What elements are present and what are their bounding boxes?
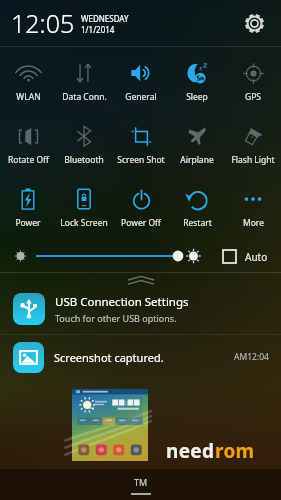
button[interactable]: Flash Light <box>225 123 281 166</box>
staticText: Auto <box>245 250 268 264</box>
staticText: WEDNESDAY <box>81 13 129 24</box>
button[interactable]: Airplane <box>169 123 225 166</box>
button[interactable]: Sleep <box>169 60 225 103</box>
staticText: More <box>243 217 264 229</box>
staticText: Power Off <box>121 217 161 229</box>
staticText: WLAN <box>16 91 41 103</box>
staticText: Power <box>15 217 41 229</box>
button[interactable]: Screenshot captured. <box>0 335 281 379</box>
staticText: need <box>166 438 215 464</box>
staticText: AM12:04 <box>234 351 269 363</box>
staticText: rom <box>215 438 255 464</box>
button[interactable]: More <box>225 186 281 229</box>
button[interactable]: Restart <box>169 186 225 229</box>
button[interactable]: Bluetooth <box>56 123 112 166</box>
staticText: Airplane <box>180 154 214 166</box>
staticText: Data Conn. <box>62 91 107 103</box>
staticText: 1/1/2014 <box>81 24 115 35</box>
staticText: Touch for other USB options. <box>55 312 177 324</box>
button[interactable]: Screen Shot <box>113 123 169 166</box>
button[interactable]: General <box>113 60 169 103</box>
staticText: USB Connection Settings <box>55 294 189 310</box>
staticText: GPS <box>245 91 261 103</box>
staticText: 12:05 <box>11 6 75 40</box>
button[interactable]: GPS <box>225 60 281 103</box>
button[interactable]: USB Connection Settings <box>0 284 281 334</box>
staticText: Screen Shot <box>117 154 165 166</box>
staticText: Lock Screen <box>60 217 108 229</box>
staticText: General <box>125 91 157 103</box>
button[interactable]: Brightness <box>0 243 281 269</box>
button[interactable]: Rotate Off <box>0 123 56 166</box>
staticText: Sleep <box>186 91 208 103</box>
staticText: Flash Light <box>231 154 275 166</box>
staticText: Rotate Off <box>8 154 49 166</box>
staticText: Bluetooth <box>64 154 104 166</box>
button[interactable]: Auto <box>222 249 268 264</box>
staticText: Restart <box>183 217 212 229</box>
staticText: Screenshot captured. <box>54 350 164 365</box>
button[interactable]: Data Conn. <box>56 60 112 103</box>
button[interactable]: Settings <box>236 5 272 41</box>
staticText: TM <box>134 476 148 488</box>
button[interactable]: Power <box>0 186 56 229</box>
button[interactable]: Lock Screen <box>56 186 112 229</box>
button[interactable]: Power Off <box>113 186 169 229</box>
button[interactable]: WLAN <box>0 60 56 103</box>
